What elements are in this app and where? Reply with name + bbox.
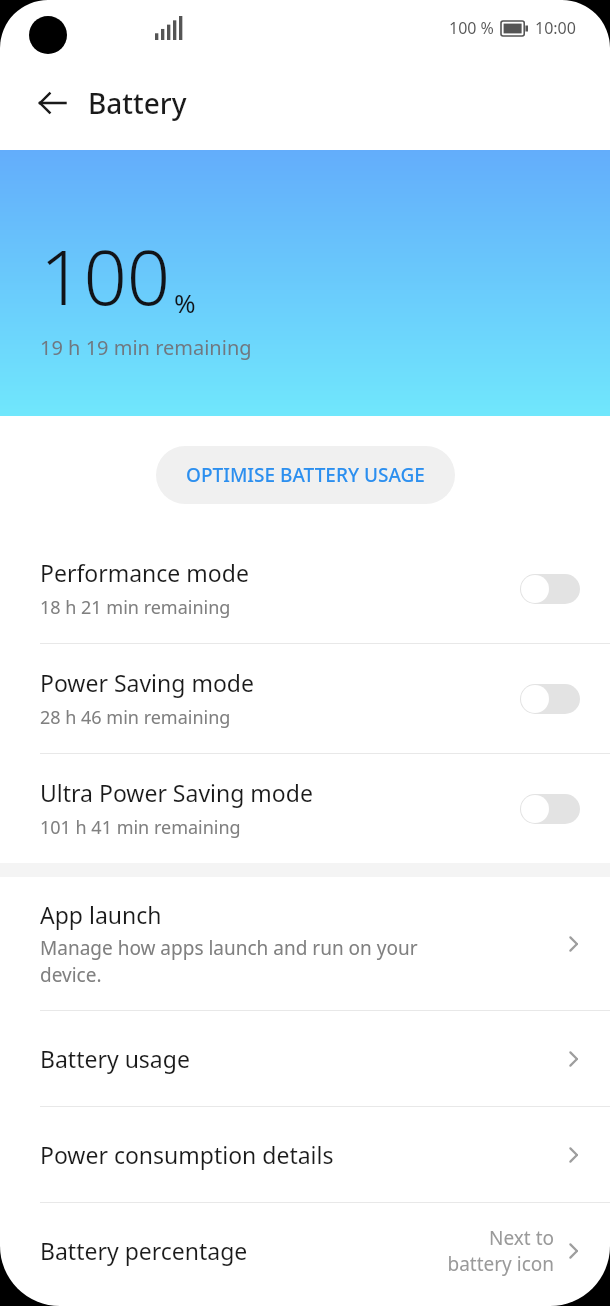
staticText: Next to battery icon — [447, 1225, 554, 1277]
staticText: 100 — [40, 224, 171, 328]
staticText: 19 h 19 min remaining — [40, 334, 252, 361]
button[interactable]: Performance mode — [520, 574, 580, 604]
button[interactable]: Battery usage — [0, 1011, 610, 1106]
staticText: % — [174, 285, 196, 320]
button[interactable]: Power Saving mode — [0, 644, 610, 753]
button[interactable]: OPTIMISE BATTERY USAGE — [156, 446, 455, 504]
staticText: 18 h 21 min remaining — [40, 595, 231, 620]
staticText: OPTIMISE BATTERY USAGE — [186, 462, 425, 488]
staticText: Battery — [88, 84, 187, 122]
staticText: Power consumption details — [40, 1139, 334, 1170]
staticText: 100 % — [449, 17, 494, 39]
staticText: Manage how apps launch and run on your d… — [40, 935, 418, 988]
button[interactable]: Battery percentage — [0, 1203, 610, 1298]
staticText: Ultra Power Saving mode — [40, 777, 313, 808]
staticText: Performance mode — [40, 557, 249, 588]
staticText: Battery usage — [40, 1043, 190, 1074]
staticText: 10:00 — [535, 17, 576, 39]
staticText: 28 h 46 min remaining — [40, 705, 231, 730]
button[interactable]: Power Saving mode — [520, 684, 580, 714]
button[interactable]: App launch — [0, 877, 610, 1010]
staticText: Battery percentage — [40, 1235, 248, 1266]
staticText: App launch — [40, 899, 162, 930]
button[interactable]: Power consumption details — [0, 1107, 610, 1202]
staticText: 101 h 41 min remaining — [40, 815, 241, 840]
button[interactable]: Ultra Power Saving mode — [0, 754, 610, 863]
button[interactable]: Performance mode — [0, 534, 610, 643]
staticText: Power Saving mode — [40, 667, 254, 698]
button[interactable]: Back — [28, 79, 76, 127]
button[interactable]: Ultra Power Saving mode — [520, 794, 580, 824]
